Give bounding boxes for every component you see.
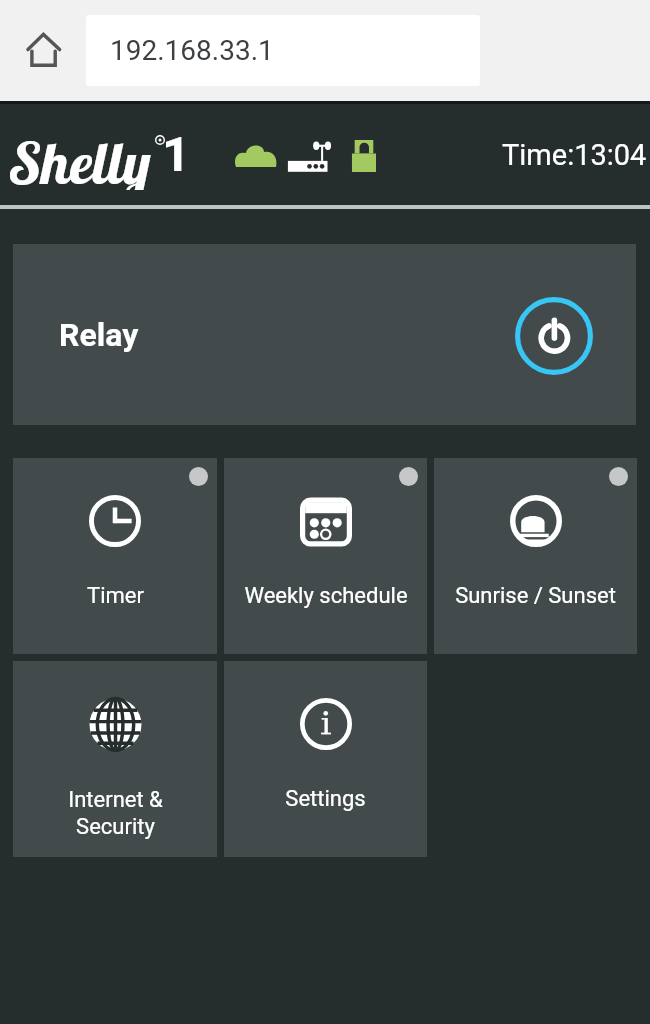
staticText: Internet & Security — [68, 787, 163, 839]
button[interactable]: Internet & Security — [13, 661, 217, 857]
button[interactable]: Weekly schedule — [224, 458, 427, 654]
button[interactable]: Shelly — [10, 120, 190, 190]
staticText: Relay — [59, 316, 139, 354]
staticText: Time:13:04 — [502, 138, 647, 172]
button[interactable]: Settings — [224, 661, 427, 857]
staticText: Sunrise / Sunset — [455, 583, 616, 609]
staticText: Timer — [87, 583, 144, 609]
button[interactable]: Relay — [13, 244, 636, 425]
staticText: Settings — [285, 786, 366, 812]
staticText: 1 — [162, 126, 190, 183]
button[interactable]: Security — [349, 139, 376, 172]
staticText: Shelly — [10, 126, 152, 190]
staticText: 192.168.33.1 — [110, 34, 274, 67]
button[interactable]: Home — [22, 28, 66, 72]
button[interactable]: Timer — [13, 458, 217, 654]
button[interactable]: WiFi router — [287, 134, 332, 176]
button[interactable]: Sunrise / Sunset — [434, 458, 637, 654]
button[interactable]: 192.168.33.1 — [86, 15, 480, 86]
button[interactable]: Toggle relay power — [515, 297, 593, 375]
staticText: Weekly schedule — [244, 583, 408, 609]
button[interactable]: Cloud connection — [236, 143, 276, 167]
